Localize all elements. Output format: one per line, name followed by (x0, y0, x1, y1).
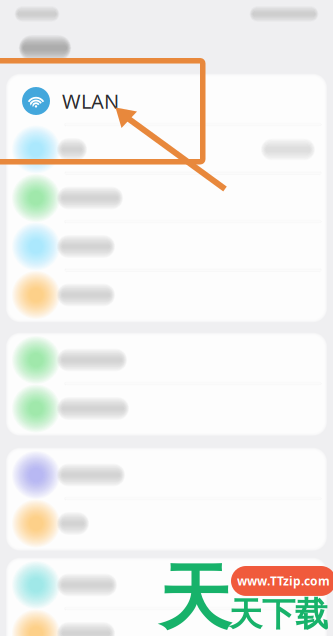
button[interactable]: Settings item (9, 561, 324, 609)
staticText: 天下载 (229, 594, 328, 635)
button[interactable]: Settings item (9, 174, 324, 222)
button[interactable]: Settings item (9, 271, 324, 319)
button[interactable]: Settings item (9, 336, 324, 384)
button[interactable]: Settings item (9, 451, 324, 499)
button[interactable]: Settings item (9, 125, 324, 174)
button[interactable]: Settings item (9, 222, 324, 271)
staticText: WLAN (62, 88, 119, 114)
staticText: www.TTzip.com (237, 573, 330, 589)
button[interactable]: Settings item (9, 499, 324, 548)
button[interactable]: Settings item (9, 384, 324, 433)
button[interactable]: Settings item (9, 609, 324, 636)
button[interactable]: WLAN (9, 77, 324, 125)
staticText: 天 (159, 554, 231, 636)
